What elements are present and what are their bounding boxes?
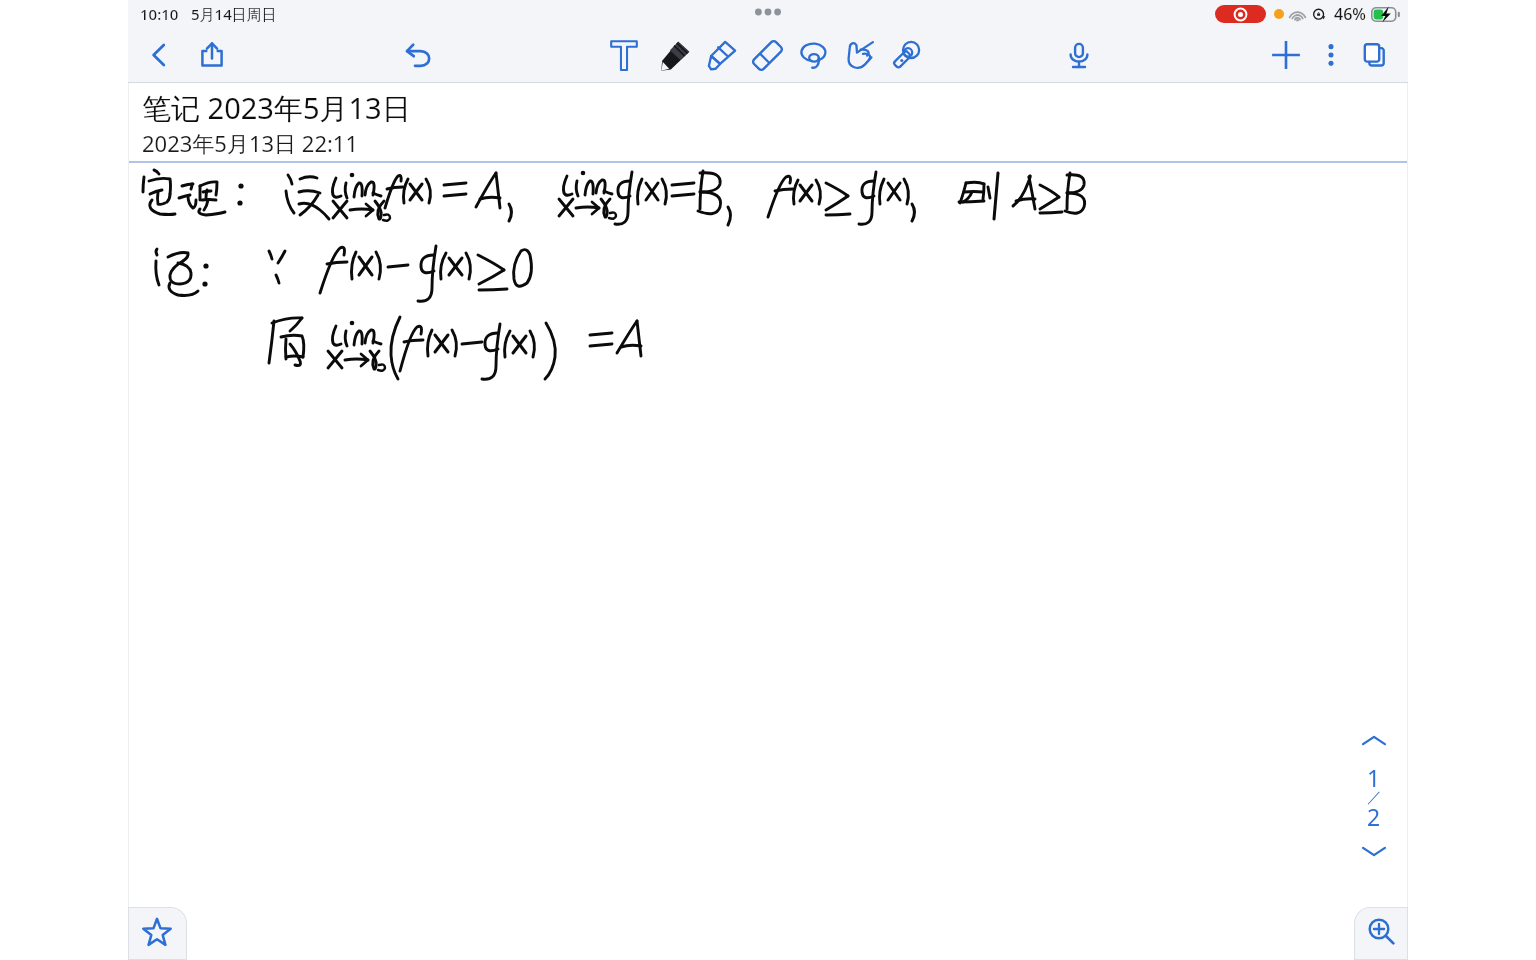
staticText: 5月14日周日 xyxy=(191,4,277,24)
staticText: 10:10 xyxy=(140,4,179,24)
button[interactable]: Pen xyxy=(654,34,696,76)
staticText: 1 xyxy=(1367,762,1381,793)
button[interactable]: Zoom in xyxy=(1354,907,1408,960)
button[interactable]: Pages xyxy=(1354,34,1396,76)
button[interactable]: Previous page xyxy=(1352,719,1396,763)
button[interactable]: Lasso select xyxy=(793,34,835,76)
button[interactable]: Hand xyxy=(839,34,881,76)
staticText: 2023年5月13日 22:11 xyxy=(142,128,359,158)
staticText: 46% xyxy=(1334,3,1366,25)
button[interactable]: Add xyxy=(1265,34,1307,76)
button[interactable]: Laser pointer xyxy=(884,34,926,76)
button[interactable]: Record audio xyxy=(1058,34,1100,76)
button[interactable]: Undo xyxy=(397,34,439,76)
button[interactable]: Back xyxy=(138,34,180,76)
button[interactable]: Next page xyxy=(1352,829,1396,873)
staticText: ／ xyxy=(1367,788,1382,807)
staticText: 2 xyxy=(1367,801,1381,832)
button[interactable]: More options xyxy=(1310,34,1352,76)
button[interactable]: Eraser xyxy=(746,34,788,76)
staticText: 笔记 2023年5月13日 xyxy=(142,88,411,128)
button[interactable]: Highlighter xyxy=(701,34,743,76)
button[interactable]: Text tool xyxy=(603,34,645,76)
button[interactable]: Share xyxy=(191,34,233,76)
button[interactable]: Favorite xyxy=(128,907,187,960)
